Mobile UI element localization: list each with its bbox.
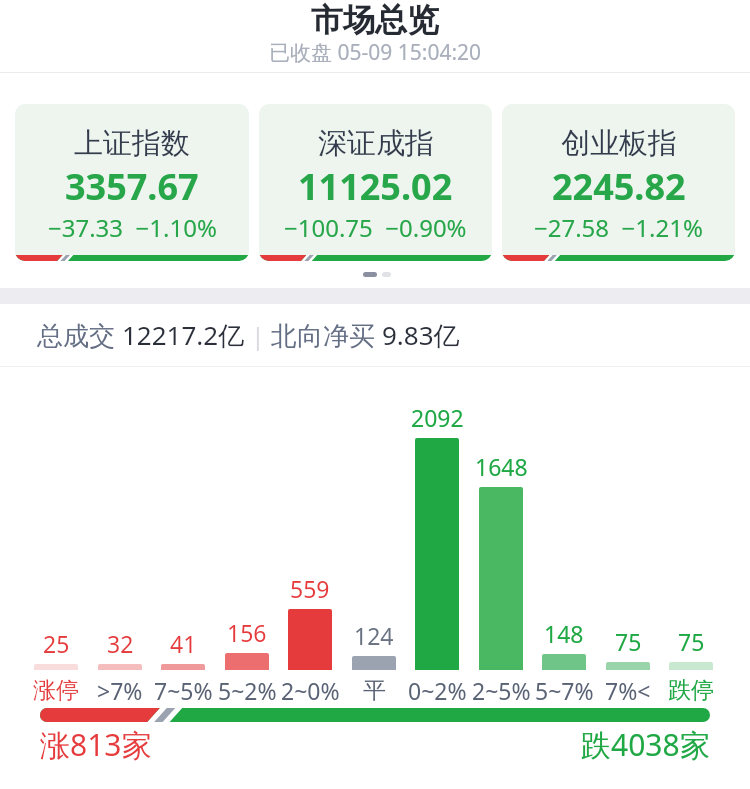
staticText: 2~0% <box>281 675 340 706</box>
staticText: 148 <box>544 618 584 648</box>
staticText: 平 <box>363 676 386 705</box>
staticText: 559 <box>290 573 330 603</box>
staticText: 上证指数 <box>74 125 190 162</box>
staticText: 75 <box>678 626 705 656</box>
staticText: 北向净买 <box>271 317 382 353</box>
staticText: 跌停 <box>668 676 714 705</box>
button[interactable]: 总成交 <box>0 304 750 366</box>
staticText: 5~2% <box>218 675 277 706</box>
staticText: 总成交 <box>37 317 122 353</box>
staticText: 涨813家 <box>40 724 152 765</box>
staticText: 124 <box>354 620 394 650</box>
staticText: >7% <box>97 675 143 706</box>
button[interactable]: 创业板指 <box>502 104 735 261</box>
staticText: 156 <box>227 617 267 647</box>
button[interactable]: 深证成指 <box>259 104 492 261</box>
staticText: | <box>245 319 271 352</box>
staticText: 41 <box>170 628 197 658</box>
staticText: 1648 <box>475 451 528 481</box>
staticText: 2245.82 <box>552 162 686 211</box>
staticText: 25 <box>43 628 70 658</box>
staticText: 32 <box>107 628 134 658</box>
staticText: 创业板指 <box>561 125 677 162</box>
staticText: 2~5% <box>472 675 531 706</box>
staticText: 深证成指 <box>318 125 434 162</box>
staticText: 75 <box>615 626 642 656</box>
staticText: 市场总览 <box>311 0 439 40</box>
staticText: 7~5% <box>154 675 213 706</box>
staticText: −37.33 −1.10% <box>48 211 217 244</box>
staticText: 12217.2亿 <box>122 317 245 353</box>
staticText: 0~2% <box>408 675 467 706</box>
staticText: 7%< <box>605 675 651 706</box>
staticText: −27.58 −1.21% <box>534 211 703 244</box>
staticText: 2092 <box>411 402 464 432</box>
staticText: 跌4038家 <box>581 724 710 765</box>
button[interactable]: 上证指数 <box>15 104 249 261</box>
staticText: 已收盘 05-09 15:04:20 <box>269 38 482 67</box>
staticText: 9.83亿 <box>382 317 460 353</box>
staticText: −100.75 −0.90% <box>284 211 467 244</box>
staticText: 11125.02 <box>298 162 453 211</box>
staticText: 5~7% <box>535 675 594 706</box>
staticText: 3357.67 <box>65 162 199 211</box>
staticText: 涨停 <box>33 676 79 705</box>
